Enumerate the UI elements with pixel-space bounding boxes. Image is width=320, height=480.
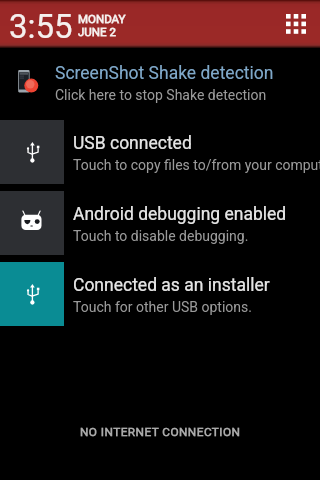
- staticText: Android debugging enabled: [73, 204, 287, 225]
- staticText: Touch to copy files to/from your compute…: [73, 157, 320, 173]
- staticText: 3:55: [9, 7, 73, 46]
- staticText: Touch to disable debugging.: [73, 228, 249, 244]
- staticText: ScreenShot Shake detection: [55, 63, 274, 84]
- staticText: NO INTERNET CONNECTION: [80, 425, 241, 439]
- staticText: USB connected: [73, 133, 192, 154]
- staticText: JUNE 2: [78, 25, 116, 38]
- button[interactable]: Quick settings: [272, 0, 320, 48]
- button[interactable]: USB connected: [0, 120, 320, 184]
- button[interactable]: Android debugging enabled: [0, 191, 320, 255]
- staticText: Touch for other USB options.: [73, 299, 252, 315]
- button[interactable]: Connected as an installer: [0, 262, 320, 326]
- staticText: MONDAY: [78, 12, 126, 25]
- button[interactable]: ScreenShot Shake detection: [0, 48, 320, 120]
- staticText: Connected as an installer: [73, 275, 270, 296]
- staticText: Click here to stop Shake detection: [55, 87, 267, 103]
